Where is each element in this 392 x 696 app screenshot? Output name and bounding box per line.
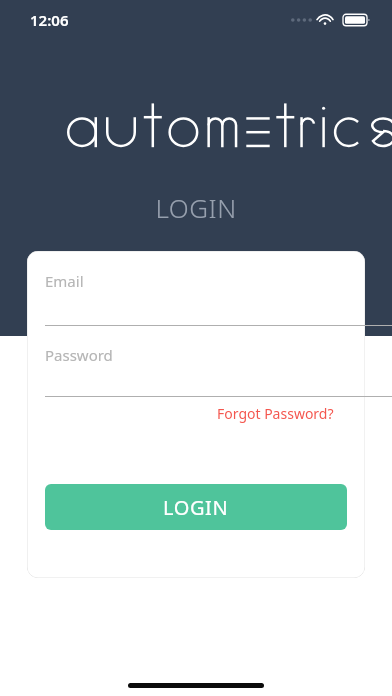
staticText: Forgot Password? (217, 404, 334, 423)
staticText: 12:06 (30, 10, 69, 30)
button[interactable]: LOGIN (45, 484, 347, 530)
staticText: Email (45, 271, 84, 291)
button[interactable]: Forgot Password? (213, 401, 338, 426)
staticText: LOGIN (0, 190, 392, 225)
staticText: LOGIN (163, 494, 229, 521)
staticText: Password (45, 345, 113, 365)
